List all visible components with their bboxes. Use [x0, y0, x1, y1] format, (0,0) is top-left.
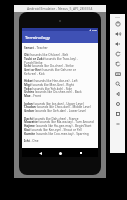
button[interactable]: Sensei - Teacher	[24, 46, 96, 50]
button[interactable]: Power	[110, 19, 125, 29]
button[interactable]: Gedan (sounds like Geh-dan) - Lower Leve…	[24, 109, 96, 113]
button[interactable]: Yoko (sounds like Yoh-koh) - Side	[24, 87, 96, 91]
button[interactable]: Kiai (sounds like Kee-eye) - Shout or Ye…	[24, 128, 96, 132]
button[interactable]: Volume down	[110, 39, 125, 49]
button[interactable]: Overview	[110, 109, 125, 119]
staticText: 5:06	[92, 28, 97, 31]
button[interactable]: Uchi (sounds like Oo-chee) - Strike	[24, 64, 96, 68]
button[interactable]: Geri or Keri (sounds like Geh-ree or Keh…	[24, 68, 96, 76]
button[interactable]: Obi (sounds like Oh-bee) - Belt	[24, 53, 96, 57]
button[interactable]: Hajime (sounds like Ha-gee-may) - Begin/…	[24, 124, 96, 128]
button[interactable]: Take screenshot	[110, 69, 125, 79]
button[interactable]: Home	[57, 150, 63, 156]
staticText: Terminology	[25, 35, 51, 41]
button[interactable]: More	[110, 119, 125, 129]
button[interactable]: Jodan (sounds like Joe-dan) - Upper Leve…	[24, 102, 96, 106]
staticText: Android Emulator - Nexus_5_API_28:5554	[27, 6, 93, 11]
button[interactable]: Back	[110, 89, 125, 99]
button[interactable]: Mawatte (sounds like Ma-wa-tay) - Turn A…	[24, 120, 96, 124]
button[interactable]: Terminology	[22, 31, 98, 43]
button[interactable]: Recents	[78, 150, 84, 156]
button[interactable]: Tsuki or Zuki (sounds like Tsoo-key) - P…	[24, 57, 96, 65]
button[interactable]: Hidari (sounds like Hee-dar-ee) - Left	[24, 79, 96, 83]
button[interactable]: Ichi - One	[24, 139, 96, 143]
button[interactable]: Kumite (sounds like Coo-mee-tay) - Sparr…	[24, 132, 96, 136]
button[interactable]: Zoom	[110, 79, 125, 89]
button[interactable]: Migi (sounds like Mee-Gee) - Right	[24, 83, 96, 87]
button[interactable]: Mae - Front	[24, 94, 96, 98]
button[interactable]: Chudan (sounds like Choo-dan) - Middle L…	[24, 105, 96, 109]
button[interactable]: Ushiro (sounds like Oo-shee-roh) - Back	[24, 90, 96, 94]
button[interactable]: Volume up	[110, 29, 125, 39]
button[interactable]: Back	[37, 150, 43, 156]
button[interactable]: Home	[110, 99, 125, 109]
button[interactable]: Rotate right	[110, 59, 125, 69]
button[interactable]: Rotate left	[110, 49, 125, 59]
button[interactable]: Dachi (sounds like Dah-chee) - Stance	[24, 117, 96, 121]
